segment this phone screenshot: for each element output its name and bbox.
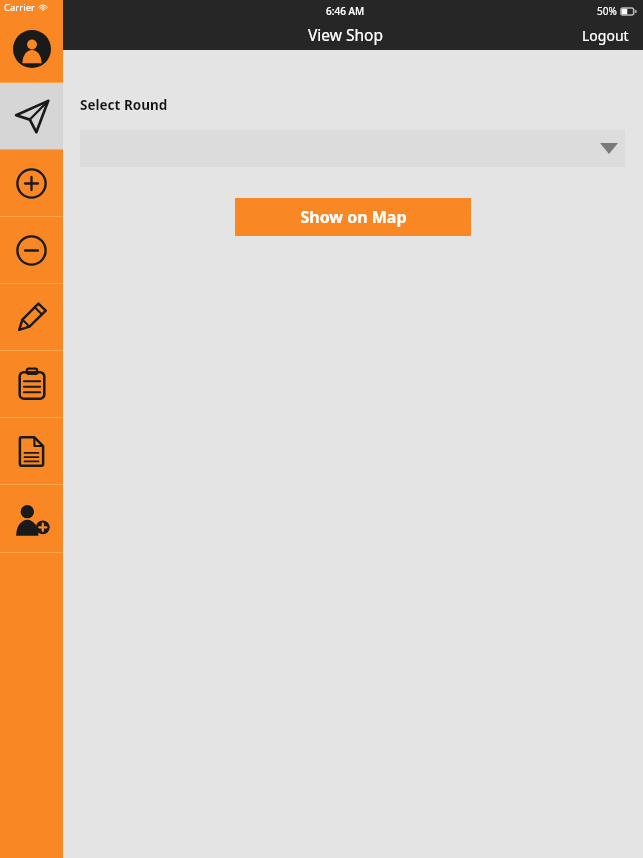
button[interactable]: Show on Map <box>235 198 471 236</box>
staticText: View Shop <box>308 24 383 45</box>
staticText: Logout <box>582 26 629 45</box>
staticText: 50% <box>597 4 617 18</box>
button[interactable]: Send <box>0 83 63 149</box>
staticText: 6:46 AM <box>326 4 365 18</box>
button[interactable]: Profile <box>0 15 63 82</box>
button[interactable] <box>80 130 625 167</box>
button[interactable]: Add <box>0 150 63 216</box>
staticText: Show on Map <box>300 206 407 228</box>
button[interactable]: Remove <box>0 217 63 283</box>
button[interactable]: Add customer <box>0 485 63 552</box>
button[interactable]: Orders <box>0 351 63 417</box>
staticText: Select Round <box>80 96 168 114</box>
button[interactable]: Reports <box>0 418 63 484</box>
staticText: Carrier <box>4 1 35 14</box>
button[interactable]: Logout <box>568 22 643 49</box>
button[interactable]: Edit <box>0 284 63 350</box>
